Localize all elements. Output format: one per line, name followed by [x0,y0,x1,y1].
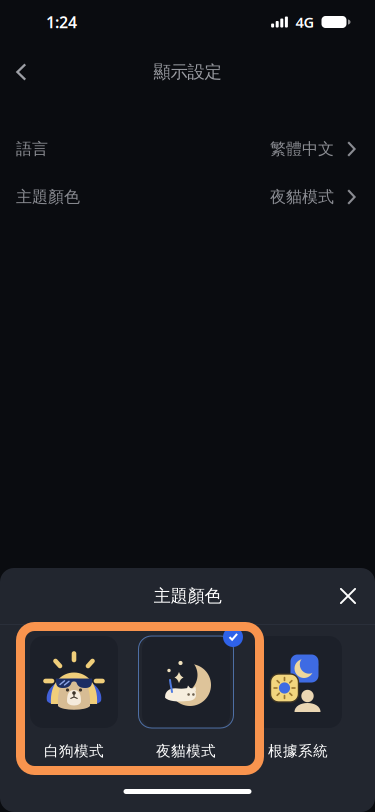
button[interactable]: 根據系統 [242,636,354,760]
button[interactable]: 主題顏色 [0,173,375,221]
staticText: 白狗模式 [44,742,104,760]
button[interactable]: 白狗模式 [18,636,130,760]
button[interactable]: Close [326,574,375,618]
staticText: 4G [295,12,314,32]
staticText: 顯示設定 [153,61,221,83]
staticText: 語言 [16,139,48,159]
staticText: 根據系統 [268,742,328,760]
button[interactable]: 語言 [0,125,375,173]
button[interactable]: 夜貓模式 [130,636,242,760]
staticText: 1:24 [46,11,77,33]
staticText: 主題顏色 [16,187,80,207]
button[interactable]: Back [0,52,41,92]
staticText: 繁體中文 [270,139,334,159]
staticText: 主題顏色 [153,585,221,607]
staticText: 夜貓模式 [156,742,216,760]
staticText: 夜貓模式 [270,187,334,207]
